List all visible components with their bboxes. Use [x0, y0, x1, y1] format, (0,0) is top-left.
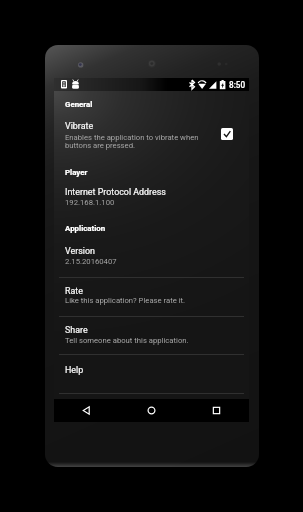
staticText: Donate — [65, 403, 94, 413]
staticText: Player — [65, 168, 88, 177]
staticText: 8:50 — [229, 80, 246, 90]
staticText: 192.168.1.100 — [65, 198, 115, 207]
staticText: Like this application? Please rate it. — [65, 296, 186, 305]
staticText: Version — [65, 246, 95, 256]
staticText: General — [65, 100, 93, 109]
staticText: Rate — [65, 286, 83, 296]
button[interactable] — [54, 116, 249, 156]
button[interactable]: Home — [119, 399, 184, 422]
button[interactable] — [54, 182, 249, 217]
staticText: Share — [65, 325, 88, 335]
button[interactable] — [54, 240, 249, 277]
staticText: Help — [65, 365, 84, 375]
staticText: Enables the application to vibrate when … — [65, 133, 199, 150]
staticText: Tell someone about this application. — [65, 336, 189, 345]
staticText: Vibrate — [65, 121, 94, 131]
button[interactable] — [54, 316, 249, 354]
button[interactable]: Recent apps — [184, 399, 249, 422]
staticText: 2.15.20160407 — [65, 257, 117, 266]
staticText: Application — [65, 224, 106, 233]
button[interactable] — [54, 278, 249, 316]
button[interactable]: Back — [54, 399, 119, 422]
button[interactable]: Vibrate — [221, 128, 233, 140]
button[interactable] — [54, 355, 249, 393]
button[interactable] — [54, 394, 249, 432]
staticText: Internet Protocol Address — [65, 187, 166, 197]
